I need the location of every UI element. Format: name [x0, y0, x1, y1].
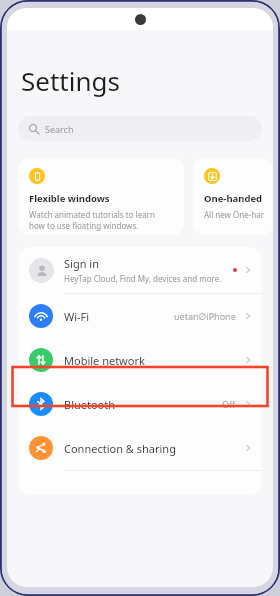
staticText: Off: [222, 398, 236, 410]
button[interactable]: Connection & sharing: [18, 426, 262, 470]
staticText: Mobile network: [64, 353, 243, 368]
staticText: All new One-har: [204, 209, 264, 220]
staticText: Bluetooth: [64, 397, 222, 412]
staticText: One-handed: [204, 192, 263, 205]
button[interactable]: Wi-Fi: [18, 294, 262, 338]
button[interactable]: Sign in: [18, 247, 262, 293]
other: Open: [243, 443, 253, 453]
other: Open: [243, 265, 253, 275]
staticText: uetan∅iPhone: [174, 310, 236, 322]
staticText: Wi-Fi: [64, 309, 174, 324]
other: Open: [243, 355, 253, 365]
button[interactable]: One-handed: [193, 158, 273, 235]
staticText: HeyTap Cloud, Find My, devices and more.: [64, 273, 222, 284]
button[interactable]: Mobile network: [18, 338, 262, 382]
other: Open: [243, 399, 253, 409]
staticText: Search: [45, 123, 74, 135]
staticText: Watch animated tutorials to learn how to…: [29, 209, 155, 231]
other: Open: [243, 311, 253, 321]
staticText: Settings: [21, 63, 120, 98]
staticText: Flexible windows: [29, 192, 110, 205]
staticText: Sign in: [64, 256, 99, 271]
staticText: Connection & sharing: [64, 441, 243, 456]
button[interactable]: Flexible windows: [18, 158, 184, 235]
button[interactable]: Search: [18, 116, 262, 141]
button[interactable]: Bluetooth: [18, 382, 262, 426]
